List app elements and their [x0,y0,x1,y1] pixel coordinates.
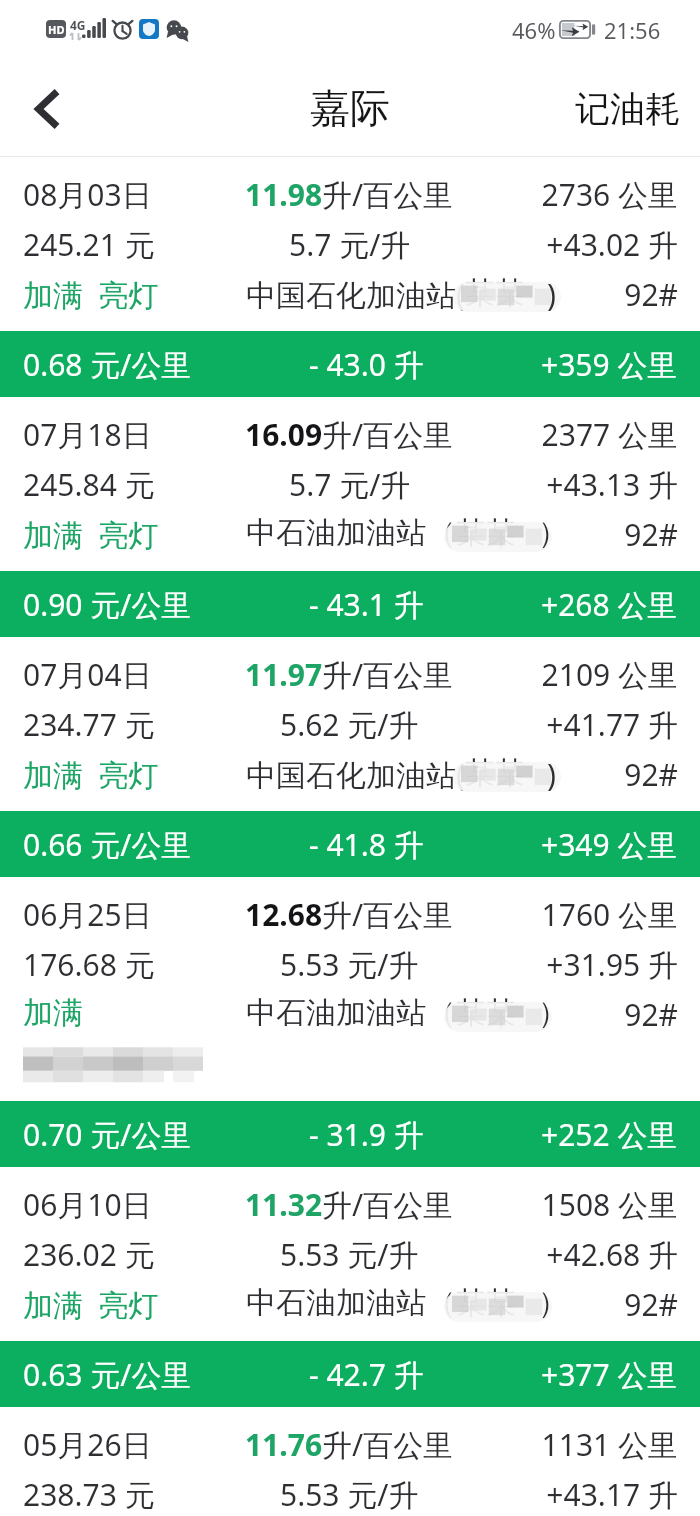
staticText: 12.68升/百公里 [245,894,454,935]
staticText: HD [48,22,65,37]
staticText: +43.13 升 [0,464,678,505]
staticText: 2109 公里 [0,654,678,695]
button[interactable]: 0.90 元/公里 [0,571,700,637]
staticText: 1508 公里 [0,1184,678,1225]
staticText: 0.63 元/公里 [23,1354,192,1395]
staticText: 0.68 元/公里 [23,344,192,385]
button[interactable]: 06月25日 [0,877,700,1101]
staticText: 5.62 元/升 [280,704,419,745]
staticText: 06月25日 [23,894,152,935]
staticText: 21:56 [604,15,661,45]
staticText: 5.7 元/升 [289,224,411,265]
staticText: +359 公里 [541,344,678,385]
staticText: 11.32升/百公里 [245,1184,454,1225]
staticText: 加满 亮灯 [23,514,159,555]
staticText: - 41.8 升 [309,824,424,865]
staticText: 1131 公里 [0,1424,678,1465]
button[interactable]: Back [11,74,81,144]
button[interactable]: 0.70 元/公里 [0,1101,700,1167]
button[interactable]: 08月03日 [0,157,700,331]
staticText: 加满 亮灯 [23,754,159,795]
staticText: 08月03日 [23,174,152,215]
staticText: 06月10日 [23,1184,152,1225]
staticText: 某某站 [456,1284,538,1324]
staticText: - 43.0 升 [309,344,424,385]
staticText: ) [547,754,556,795]
button[interactable]: 0.66 元/公里 [0,811,700,877]
staticText: 5.53 元/升 [280,1234,419,1275]
staticText: 中石油加油站（ [246,994,456,1032]
button[interactable]: 05月26日 [0,1407,700,1516]
staticText: 236.02 元 [23,1234,155,1275]
button[interactable]: 0.63 元/公里 [0,1341,700,1407]
staticText: 05月26日 [23,1424,152,1465]
staticText: 2736 公里 [0,174,678,215]
staticText: +31.95 升 [0,944,678,985]
staticText: 中国石化加油站( [246,754,465,795]
button[interactable]: 07月18日 [0,397,700,571]
staticText: 2377 公里 [0,414,678,455]
staticText: +41.77 升 [0,704,678,745]
button[interactable]: 06月10日 [0,1167,700,1341]
staticText: 5.53 元/升 [280,944,419,985]
staticText: 46% [512,15,556,45]
staticText: ) [547,274,556,315]
staticText: +43.02 升 [0,224,678,265]
staticText: 中石油加油站（ [246,514,456,552]
staticText: 11.76升/百公里 [245,1424,454,1465]
staticText: 加满 亮灯 [23,274,159,315]
staticText: 92# [0,754,678,795]
staticText: 5.7 元/升 [289,464,411,505]
staticText: 某某站 [456,514,538,554]
staticText: - 43.1 升 [309,584,424,625]
staticText: +252 公里 [541,1114,678,1155]
staticText: ） [538,1284,568,1322]
staticText: 中石油加油站（ [246,1284,456,1322]
button[interactable]: 07月04日 [0,637,700,811]
staticText: ） [538,514,568,552]
staticText: 某某站 [465,754,547,794]
staticText: +42.68 升 [0,1234,678,1275]
staticText: 11.97升/百公里 [245,654,454,695]
staticText: 07月18日 [23,414,152,455]
staticText: 加满 [23,994,83,1032]
staticText: 0.70 元/公里 [23,1114,192,1155]
staticText: +377 公里 [541,1354,678,1395]
staticText: 中国石化加油站( [246,274,465,315]
staticText: - 31.9 升 [309,1114,424,1155]
staticText: 4G [70,17,86,33]
staticText: +268 公里 [541,584,678,625]
staticText: 92# [0,994,678,1035]
staticText: 0.90 元/公里 [23,584,192,625]
staticText: +349 公里 [541,824,678,865]
staticText: 某某站 [456,994,538,1034]
staticText: 1760 公里 [0,894,678,935]
staticText: 245.84 元 [23,464,155,505]
button[interactable]: 0.68 元/公里 [0,331,700,397]
staticText: 5.53 元/升 [280,1474,419,1515]
staticText: 07月04日 [23,654,152,695]
staticText: 176.68 元 [23,944,155,985]
staticText: 记油耗 [575,87,680,131]
staticText: 245.21 元 [23,224,155,265]
staticText: 0.66 元/公里 [23,824,192,865]
staticText: - 42.7 升 [309,1354,424,1395]
staticText: 11.98升/百公里 [245,174,454,215]
staticText: 92# [0,274,678,315]
staticText: +43.17 升 [0,1474,678,1515]
staticText: 嘉际 [310,83,390,133]
staticText: 238.73 元 [23,1474,155,1515]
staticText: ） [538,994,568,1032]
button[interactable]: 记油耗 [555,73,700,145]
staticText: 加满 亮灯 [23,1284,159,1325]
staticText: 16.09升/百公里 [245,414,454,455]
staticText: 92# [0,514,678,555]
staticText: 234.77 元 [23,704,155,745]
staticText: 某某站 [465,274,547,314]
staticText: 92# [0,1284,678,1325]
